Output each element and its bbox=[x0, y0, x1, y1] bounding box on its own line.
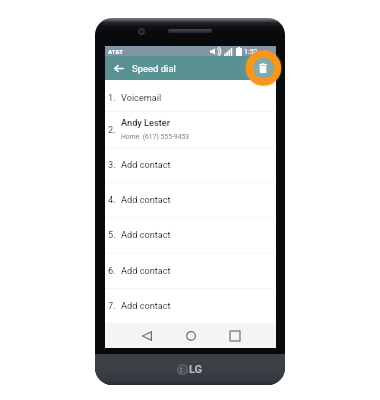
button[interactable]: Home bbox=[180, 324, 202, 348]
staticText: AT&T bbox=[108, 48, 124, 55]
staticText: 3. bbox=[108, 159, 116, 170]
button[interactable]: Recent apps bbox=[224, 324, 246, 348]
staticText: 1:52 bbox=[244, 48, 258, 56]
button[interactable]: Delete bbox=[255, 60, 271, 76]
button[interactable]: 4. bbox=[105, 182, 276, 217]
staticText: Add contact bbox=[121, 194, 171, 205]
button[interactable]: 2. bbox=[105, 111, 276, 147]
staticText: Andy Lester bbox=[121, 117, 170, 128]
staticText: LG bbox=[189, 363, 203, 376]
other: Navigate up bbox=[114, 64, 124, 73]
staticText: 1. bbox=[108, 92, 116, 103]
staticText: Speed dial bbox=[132, 63, 176, 74]
button[interactable]: 3. bbox=[105, 147, 276, 182]
button[interactable]: 7. bbox=[105, 288, 276, 323]
staticText: Add contact bbox=[121, 265, 171, 276]
staticText: Add contact bbox=[121, 300, 171, 311]
staticText: 6. bbox=[108, 265, 116, 276]
button[interactable]: 6. bbox=[105, 253, 276, 288]
staticText: Home (617) 555-9453 bbox=[121, 133, 190, 141]
button[interactable]: Navigate up bbox=[105, 56, 176, 80]
staticText: Add contact bbox=[121, 159, 171, 170]
staticText: 4. bbox=[108, 194, 116, 205]
button[interactable]: 5. bbox=[105, 217, 276, 252]
staticText: 5. bbox=[108, 229, 116, 240]
staticText: 2. bbox=[108, 124, 116, 135]
staticText: Add contact bbox=[121, 229, 171, 240]
staticText: 7. bbox=[108, 300, 116, 311]
button[interactable]: Back bbox=[136, 324, 158, 348]
staticText: Voicemail bbox=[121, 92, 162, 103]
button[interactable]: 1. bbox=[105, 82, 276, 113]
